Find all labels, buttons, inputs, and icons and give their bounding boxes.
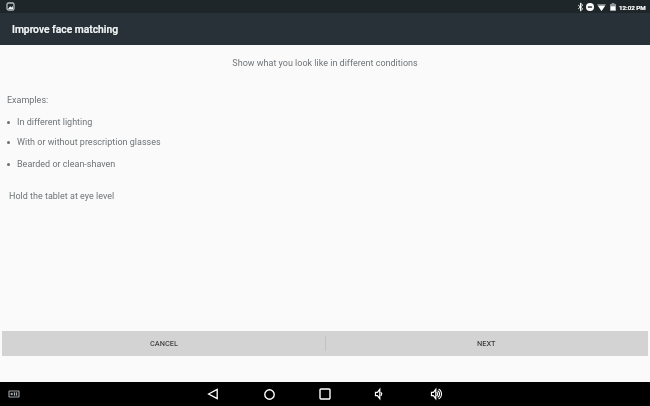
staticText: Show what you look like in different con…	[0, 58, 650, 69]
button[interactable]: Home	[241, 382, 297, 406]
button[interactable]: Recent apps	[297, 382, 353, 406]
staticText: CANCEL	[150, 339, 178, 348]
staticText: With or without prescription glasses	[17, 137, 161, 148]
staticText: 12:02 PM	[619, 4, 646, 11]
button[interactable]: Volume down	[353, 382, 409, 406]
button[interactable]: Volume up	[409, 382, 465, 406]
button[interactable]: CANCEL	[2, 331, 325, 356]
staticText: NEXT	[477, 339, 496, 348]
button[interactable]: Switch keyboard	[5, 385, 23, 403]
staticText: Improve face matching	[12, 23, 119, 35]
staticText: Examples:	[7, 95, 49, 106]
staticText: In different lighting	[17, 117, 93, 128]
staticText: Bearded or clean-shaven	[17, 159, 116, 170]
staticText: Hold the tablet at eye level	[9, 191, 115, 202]
button[interactable]: Back	[185, 382, 241, 406]
button[interactable]: NEXT	[325, 331, 648, 356]
